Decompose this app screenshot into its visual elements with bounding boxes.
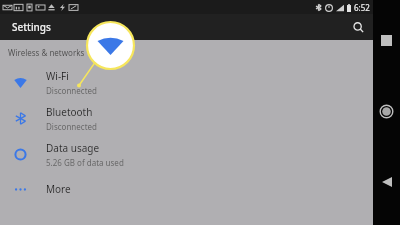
staticText: Disconnected (46, 121, 97, 132)
staticText: Wireless & networks (8, 47, 85, 58)
staticText: More (46, 182, 71, 196)
button[interactable]: Bluetooth (0, 100, 373, 136)
button[interactable]: Overview (373, 28, 400, 52)
staticText: Settings (12, 20, 51, 34)
button[interactable]: Wi-Fi (0, 64, 373, 100)
button[interactable]: Back (373, 170, 400, 194)
staticText: Disconnected (46, 85, 97, 96)
staticText: 5.26 GB of data used (46, 157, 124, 168)
staticText: Wi-Fi (46, 69, 69, 83)
staticText: Bluetooth (46, 105, 93, 119)
button[interactable]: Home (373, 99, 400, 123)
staticText: 6:52 (354, 2, 370, 13)
button[interactable]: More (0, 172, 373, 206)
button[interactable]: Search (347, 16, 369, 38)
staticText: Data usage (46, 141, 100, 155)
button[interactable]: Data usage (0, 136, 373, 172)
